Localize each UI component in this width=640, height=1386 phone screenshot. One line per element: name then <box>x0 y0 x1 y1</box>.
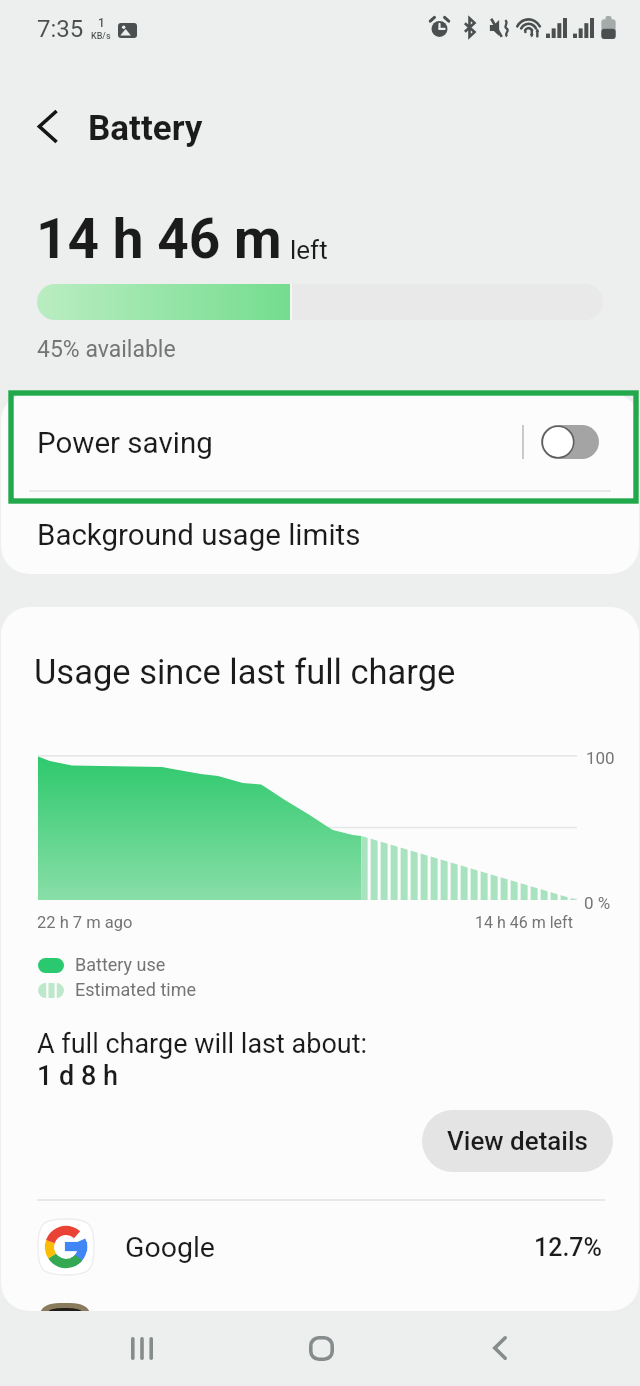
staticText: Estimated time <box>75 979 197 1000</box>
staticText: Power saving <box>37 426 213 461</box>
staticText: Battery <box>88 108 203 149</box>
button[interactable]: Background usage limits <box>1 492 639 574</box>
button[interactable]: Recent apps <box>90 1322 194 1374</box>
button[interactable]: Google <box>1 1201 639 1293</box>
staticText: KB/s <box>91 31 111 42</box>
staticText: left <box>290 235 328 265</box>
button[interactable]: Navigate up <box>20 98 76 154</box>
staticText: 100 <box>586 748 615 768</box>
staticText: A full charge will last about: <box>37 1028 368 1060</box>
staticText: Background usage limits <box>37 518 361 553</box>
staticText: 1 <box>98 16 105 30</box>
staticText: 22 h 7 m ago <box>37 913 133 932</box>
staticText: View details <box>447 1126 588 1156</box>
button[interactable]: Power saving <box>1 393 639 490</box>
staticText: 14 h 46 m <box>36 207 282 271</box>
button[interactable]: Power saving toggle, off <box>541 425 599 459</box>
staticText: Google <box>125 1231 215 1264</box>
staticText: 7:35 <box>37 15 84 43</box>
button[interactable]: Back <box>448 1322 552 1374</box>
staticText: 0 % <box>584 893 611 913</box>
button[interactable]: View details <box>422 1110 613 1172</box>
staticText: 45% available <box>37 336 176 363</box>
staticText: Battery use <box>75 954 166 975</box>
button[interactable]: Home <box>269 1322 373 1374</box>
staticText: 12.7% <box>534 1233 602 1262</box>
staticText: 14 h 46 m left <box>475 913 573 932</box>
staticText: 1 d 8 h <box>37 1060 119 1092</box>
staticText: Usage since last full charge <box>34 652 456 692</box>
